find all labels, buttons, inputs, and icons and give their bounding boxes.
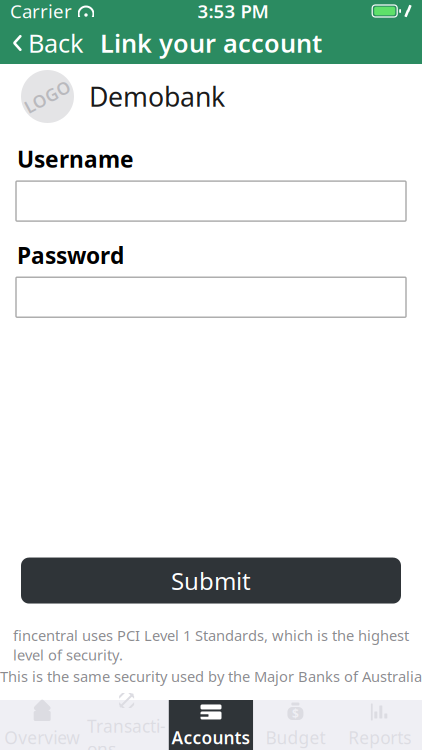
button[interactable]: Submit [21,558,401,604]
staticText: Back [28,26,84,60]
staticText: Link your account [100,26,322,60]
button[interactable]: Accounts [169,700,253,750]
staticText: This is the same security used by the Ma… [0,666,422,686]
staticText: Demobank [89,79,225,114]
button[interactable]: $ [253,700,338,750]
staticText: LOGO [22,85,72,108]
staticText: Overview [4,726,80,749]
button[interactable]: Back [0,22,96,64]
button[interactable]: Transactions [84,700,169,750]
staticText: Username [17,144,134,174]
staticText: $ [292,705,299,721]
staticText: Reports [348,726,411,749]
button[interactable]: Overview [0,700,84,750]
staticText: Carrier [10,0,72,23]
staticText: Submit [171,565,251,596]
staticText: Password [17,240,124,270]
button[interactable]: Reports [338,700,422,750]
staticText: 3:53 PM [198,0,269,23]
staticText: Accounts [171,726,250,749]
staticText: Transactions [87,714,166,750]
staticText: Budget [265,726,325,749]
staticText: fincentral uses PCI Level 1 Standards, w… [13,626,409,665]
